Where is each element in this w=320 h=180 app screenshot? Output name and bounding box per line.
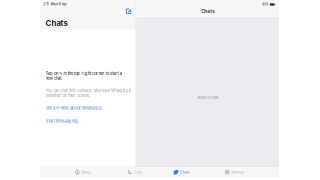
staticText: Start Messaging [45, 119, 78, 124]
button[interactable]: Tell a Friend about WhatsApp [45, 106, 102, 111]
staticText: Settings [231, 170, 244, 174]
button[interactable]: Settings [225, 167, 244, 177]
staticText: Tell a Friend about WhatsApp [45, 106, 102, 111]
staticText: 2:11 [43, 2, 48, 6]
staticText: 61% [262, 3, 268, 6]
staticText: Chats [201, 9, 214, 14]
button[interactable]: Status [75, 167, 91, 177]
staticText: You can chat with contacts who have What… [45, 88, 132, 98]
button[interactable]: New chat [124, 7, 133, 15]
staticText: Chats [180, 170, 190, 174]
staticText: Chats [45, 18, 67, 28]
button[interactable]: Chats [173, 167, 190, 177]
staticText: Wed 8 Apr [51, 2, 67, 6]
staticText: Calls [133, 170, 142, 174]
button[interactable]: Start Messaging [45, 119, 78, 124]
staticText: Status [81, 170, 91, 174]
staticText: Select a chat [197, 95, 218, 100]
staticText: Tap on ✎ in the top right corner to star… [45, 71, 122, 81]
button[interactable]: Calls [127, 167, 142, 177]
